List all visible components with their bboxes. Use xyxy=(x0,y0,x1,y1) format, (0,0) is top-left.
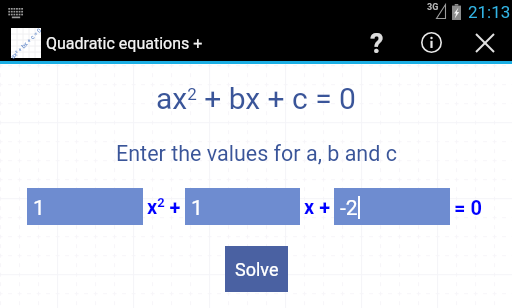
staticText: x + xyxy=(304,195,331,218)
staticText: 1 xyxy=(191,196,203,221)
staticText: 3G xyxy=(427,2,439,13)
button[interactable]: -2 xyxy=(334,188,450,225)
button[interactable]: Solve xyxy=(225,246,288,292)
button[interactable]: 1 xyxy=(27,188,143,225)
staticText: x2 + xyxy=(147,195,181,218)
button[interactable]: Info xyxy=(404,24,458,61)
staticText: Quadratic equations + xyxy=(46,34,203,53)
staticText: Solve xyxy=(235,259,279,280)
staticText: ? xyxy=(370,28,384,60)
staticText: -2 xyxy=(340,196,358,221)
staticText: 21:13 xyxy=(468,2,511,22)
staticText: = 0 xyxy=(454,196,482,219)
button[interactable]: Help xyxy=(350,24,404,61)
button[interactable]: Close xyxy=(458,24,512,61)
staticText: Enter the values for a, b and c xyxy=(116,141,397,166)
staticText: 1 xyxy=(33,196,45,221)
button[interactable]: 1 xyxy=(185,188,300,225)
staticText: ax2 + bx + c = 0 xyxy=(156,81,356,116)
